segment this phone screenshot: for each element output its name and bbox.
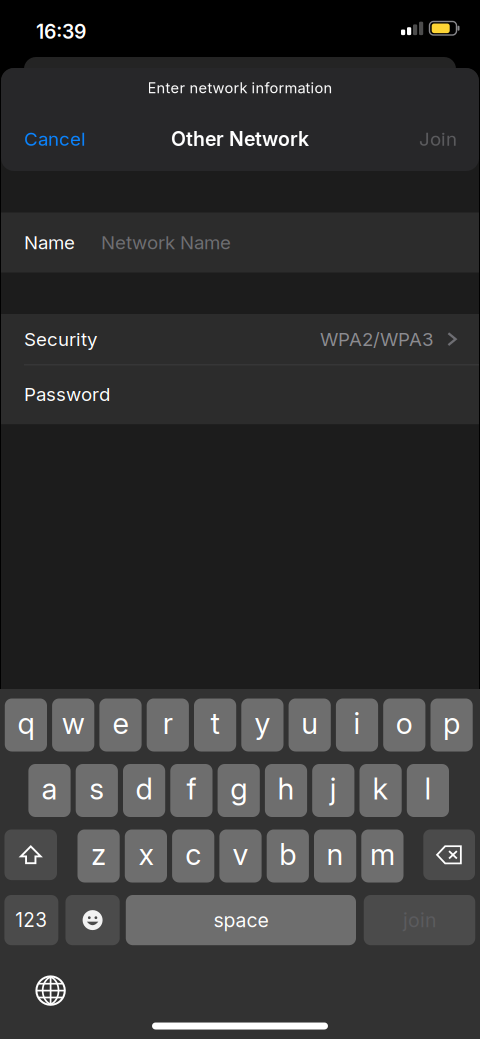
button[interactable]: i bbox=[336, 698, 378, 751]
button[interactable]: a bbox=[28, 764, 71, 817]
staticText: Other Network bbox=[171, 127, 309, 151]
staticText: j bbox=[330, 771, 337, 807]
staticText: g bbox=[230, 771, 247, 807]
button[interactable]: b bbox=[267, 829, 309, 882]
staticText: Cancel bbox=[24, 128, 86, 150]
staticText: k bbox=[373, 771, 389, 807]
button[interactable]: q bbox=[5, 698, 47, 751]
button[interactable]: k bbox=[359, 764, 402, 817]
button[interactable]: Shift bbox=[4, 829, 57, 880]
staticText: e bbox=[112, 706, 128, 741]
button[interactable]: j bbox=[312, 764, 354, 817]
staticText: u bbox=[301, 706, 318, 741]
staticText: q bbox=[17, 706, 34, 741]
staticText: v bbox=[232, 837, 248, 872]
button[interactable]: Next keyboard bbox=[29, 969, 73, 1013]
staticText: l bbox=[424, 771, 431, 807]
staticText: s bbox=[89, 771, 104, 807]
button[interactable]: c bbox=[172, 829, 214, 882]
button[interactable]: n bbox=[314, 829, 356, 882]
button[interactable]: h bbox=[265, 764, 307, 817]
staticText: f bbox=[186, 771, 196, 807]
button[interactable]: Name bbox=[1, 212, 479, 272]
button[interactable]: w bbox=[52, 698, 94, 751]
staticText: WPA2/WPA3 bbox=[320, 328, 434, 350]
button[interactable]: u bbox=[289, 698, 331, 751]
button[interactable]: g bbox=[218, 764, 260, 817]
staticText: b bbox=[279, 837, 296, 872]
staticText: o bbox=[396, 706, 413, 741]
button[interactable]: Security bbox=[1, 314, 479, 364]
button[interactable]: join bbox=[364, 895, 475, 945]
staticText: h bbox=[277, 771, 294, 807]
button[interactable]: l bbox=[407, 764, 449, 817]
staticText: r bbox=[163, 706, 173, 741]
staticText: m bbox=[370, 837, 395, 872]
staticText: 123 bbox=[15, 909, 47, 931]
button[interactable]: z bbox=[77, 829, 120, 882]
button[interactable]: t bbox=[194, 698, 236, 751]
staticText: Name bbox=[24, 231, 75, 254]
staticText: join bbox=[403, 908, 436, 932]
button[interactable]: f bbox=[170, 764, 212, 817]
staticText: Join bbox=[419, 128, 457, 150]
staticText: t bbox=[211, 706, 220, 741]
button[interactable]: x bbox=[125, 829, 167, 882]
button[interactable]: 123 bbox=[4, 895, 58, 945]
staticText: c bbox=[185, 837, 201, 872]
staticText: Network Name bbox=[101, 231, 231, 254]
staticText: Password bbox=[24, 383, 110, 406]
button[interactable]: Emoji bbox=[65, 895, 120, 945]
staticText: Security bbox=[24, 328, 97, 350]
staticText: z bbox=[91, 837, 106, 872]
button[interactable]: Password bbox=[1, 364, 479, 424]
staticText: d bbox=[136, 771, 153, 807]
staticText: w bbox=[62, 706, 85, 741]
button[interactable]: s bbox=[76, 764, 118, 817]
button[interactable]: p bbox=[430, 698, 473, 751]
button[interactable]: e bbox=[99, 698, 142, 751]
staticText: y bbox=[254, 706, 270, 741]
button[interactable]: v bbox=[219, 829, 262, 882]
staticText: p bbox=[443, 706, 460, 741]
button[interactable]: space bbox=[126, 895, 356, 945]
staticText: n bbox=[327, 837, 344, 872]
staticText: 16:39 bbox=[36, 20, 86, 44]
button[interactable]: Delete bbox=[423, 829, 475, 880]
staticText: x bbox=[138, 837, 153, 872]
button[interactable]: m bbox=[361, 829, 403, 882]
button[interactable]: o bbox=[383, 698, 425, 751]
staticText: Enter network information bbox=[147, 79, 332, 97]
button[interactable]: y bbox=[241, 698, 283, 751]
button[interactable]: Join bbox=[345, 116, 479, 162]
staticText: i bbox=[353, 706, 360, 741]
button[interactable]: r bbox=[147, 698, 189, 751]
staticText: space bbox=[213, 908, 268, 932]
button[interactable]: d bbox=[123, 764, 165, 817]
button[interactable]: Cancel bbox=[1, 116, 136, 162]
staticText: a bbox=[41, 771, 57, 807]
